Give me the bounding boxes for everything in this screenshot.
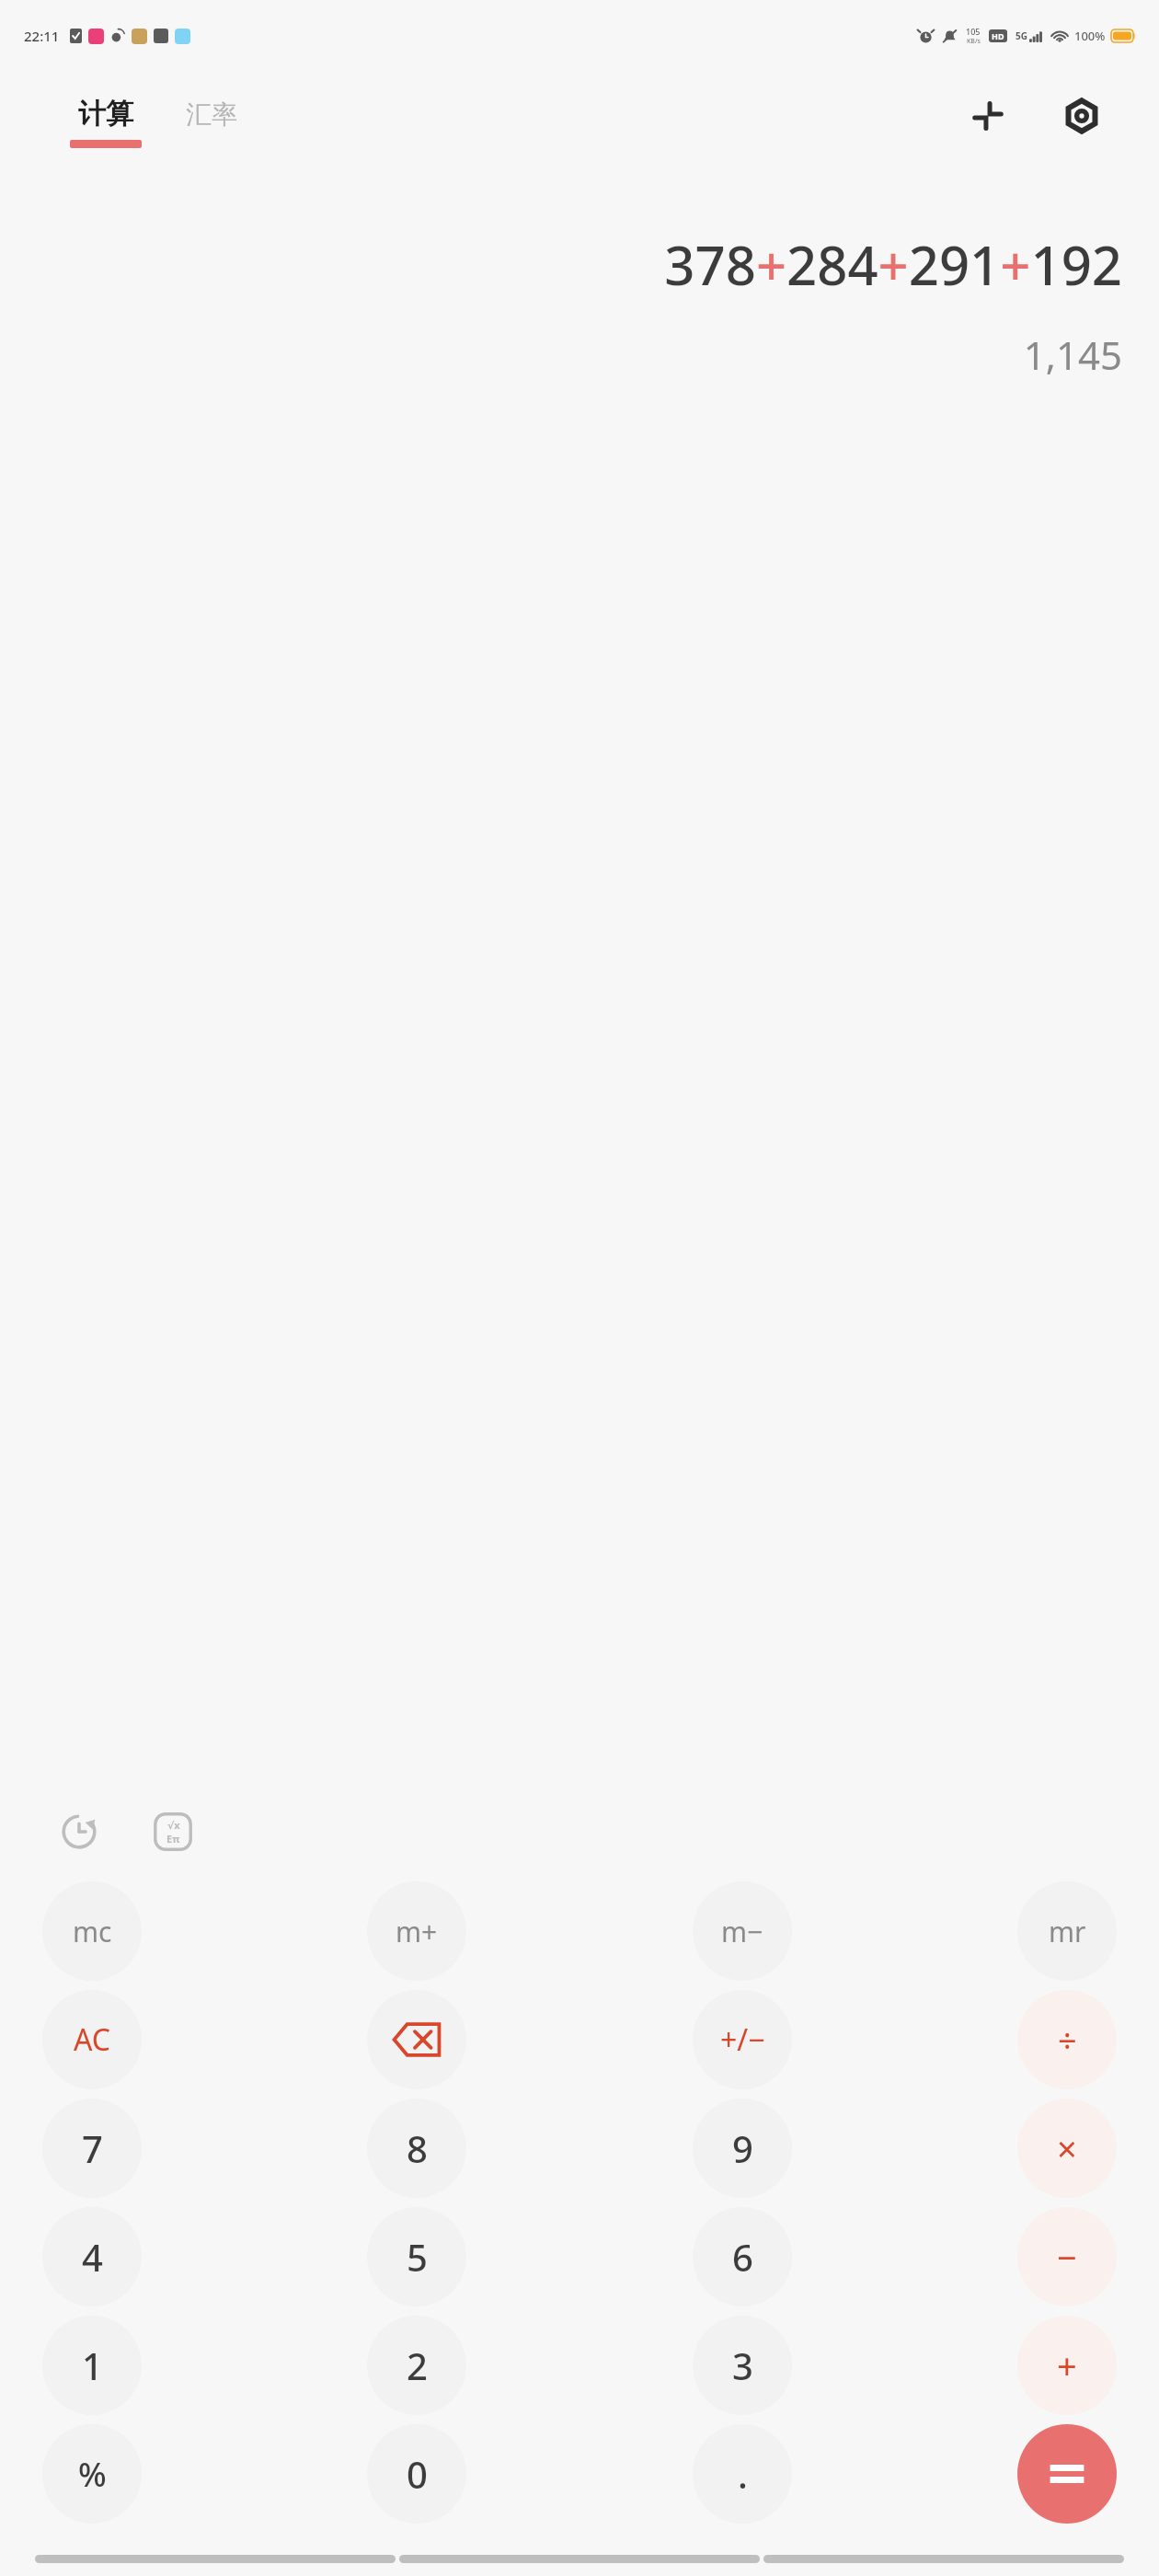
staticText: m−	[721, 1913, 763, 1950]
staticText: 0	[407, 2449, 428, 2499]
button[interactable]: 4	[42, 2207, 142, 2306]
staticText: +/−	[720, 2019, 765, 2060]
button[interactable]: m+	[367, 1881, 466, 1981]
staticText: mr	[1049, 1913, 1086, 1950]
button[interactable]: AC	[42, 1990, 142, 2089]
staticText: 5G	[1016, 29, 1027, 42]
staticText: mc	[73, 1913, 112, 1950]
button[interactable]: 1	[42, 2316, 142, 2415]
button[interactable]: ×	[1017, 2099, 1117, 2198]
staticText: +	[1057, 2341, 1077, 2389]
button[interactable]: %	[42, 2424, 142, 2524]
button[interactable]: 7	[42, 2099, 142, 2198]
staticText: KB/s	[967, 37, 981, 46]
staticText: 6	[732, 2232, 753, 2282]
staticText: 105	[966, 26, 981, 37]
button[interactable]: Navigation	[399, 2555, 760, 2563]
button[interactable]: Settings	[1056, 90, 1107, 142]
button[interactable]: Equals	[1017, 2424, 1117, 2524]
staticText: 汇率	[186, 98, 237, 131]
staticText: ×	[1057, 2124, 1077, 2172]
staticText: 7	[82, 2123, 103, 2173]
button[interactable]: mr	[1017, 1881, 1117, 1981]
staticText: 5	[407, 2232, 428, 2282]
button[interactable]: ÷	[1017, 1990, 1117, 2089]
staticText: ÷	[1058, 2018, 1077, 2063]
staticText: 计算	[78, 97, 133, 132]
button[interactable]: Collapse	[962, 90, 1014, 142]
staticText: 378+284+291+192	[37, 228, 1122, 301]
button[interactable]: 2	[367, 2316, 466, 2415]
staticText: 1	[82, 2340, 103, 2390]
staticText: 22:11	[24, 27, 60, 45]
staticText: 8	[407, 2123, 428, 2173]
staticText: 100%	[1074, 28, 1106, 44]
button[interactable]: .	[693, 2424, 792, 2524]
button[interactable]: mc	[42, 1881, 142, 1981]
staticText: −	[1057, 2233, 1077, 2281]
button[interactable]: m−	[693, 1881, 792, 1981]
button[interactable]: Navigation	[763, 2555, 1124, 2563]
button[interactable]: 8	[367, 2099, 466, 2198]
staticText: .	[738, 2449, 748, 2499]
staticText: 3	[732, 2340, 753, 2390]
staticText: HD	[992, 30, 1004, 41]
button[interactable]: 0	[367, 2424, 466, 2524]
button[interactable]: +/−	[693, 1990, 792, 2089]
button[interactable]: 6	[693, 2207, 792, 2306]
staticText: 2	[407, 2340, 428, 2390]
staticText: 1,145	[37, 328, 1122, 381]
button[interactable]: History	[46, 1799, 112, 1865]
button[interactable]: −	[1017, 2207, 1117, 2306]
button[interactable]: 9	[693, 2099, 792, 2198]
staticText: %	[78, 2452, 107, 2497]
staticText: Eπ	[166, 1832, 180, 1846]
button[interactable]: +	[1017, 2316, 1117, 2415]
button[interactable]: 3	[693, 2316, 792, 2415]
button[interactable]: Scientific	[140, 1799, 206, 1865]
staticText: AC	[74, 2019, 111, 2060]
button[interactable]: 计算	[70, 97, 142, 148]
button[interactable]: 5	[367, 2207, 466, 2306]
button[interactable]: 汇率	[186, 98, 237, 147]
button[interactable]: Backspace	[367, 1990, 466, 2089]
staticText: 4	[82, 2232, 103, 2282]
staticText: 9	[732, 2123, 753, 2173]
staticText: √x	[167, 1818, 180, 1832]
staticText: m+	[396, 1913, 438, 1950]
